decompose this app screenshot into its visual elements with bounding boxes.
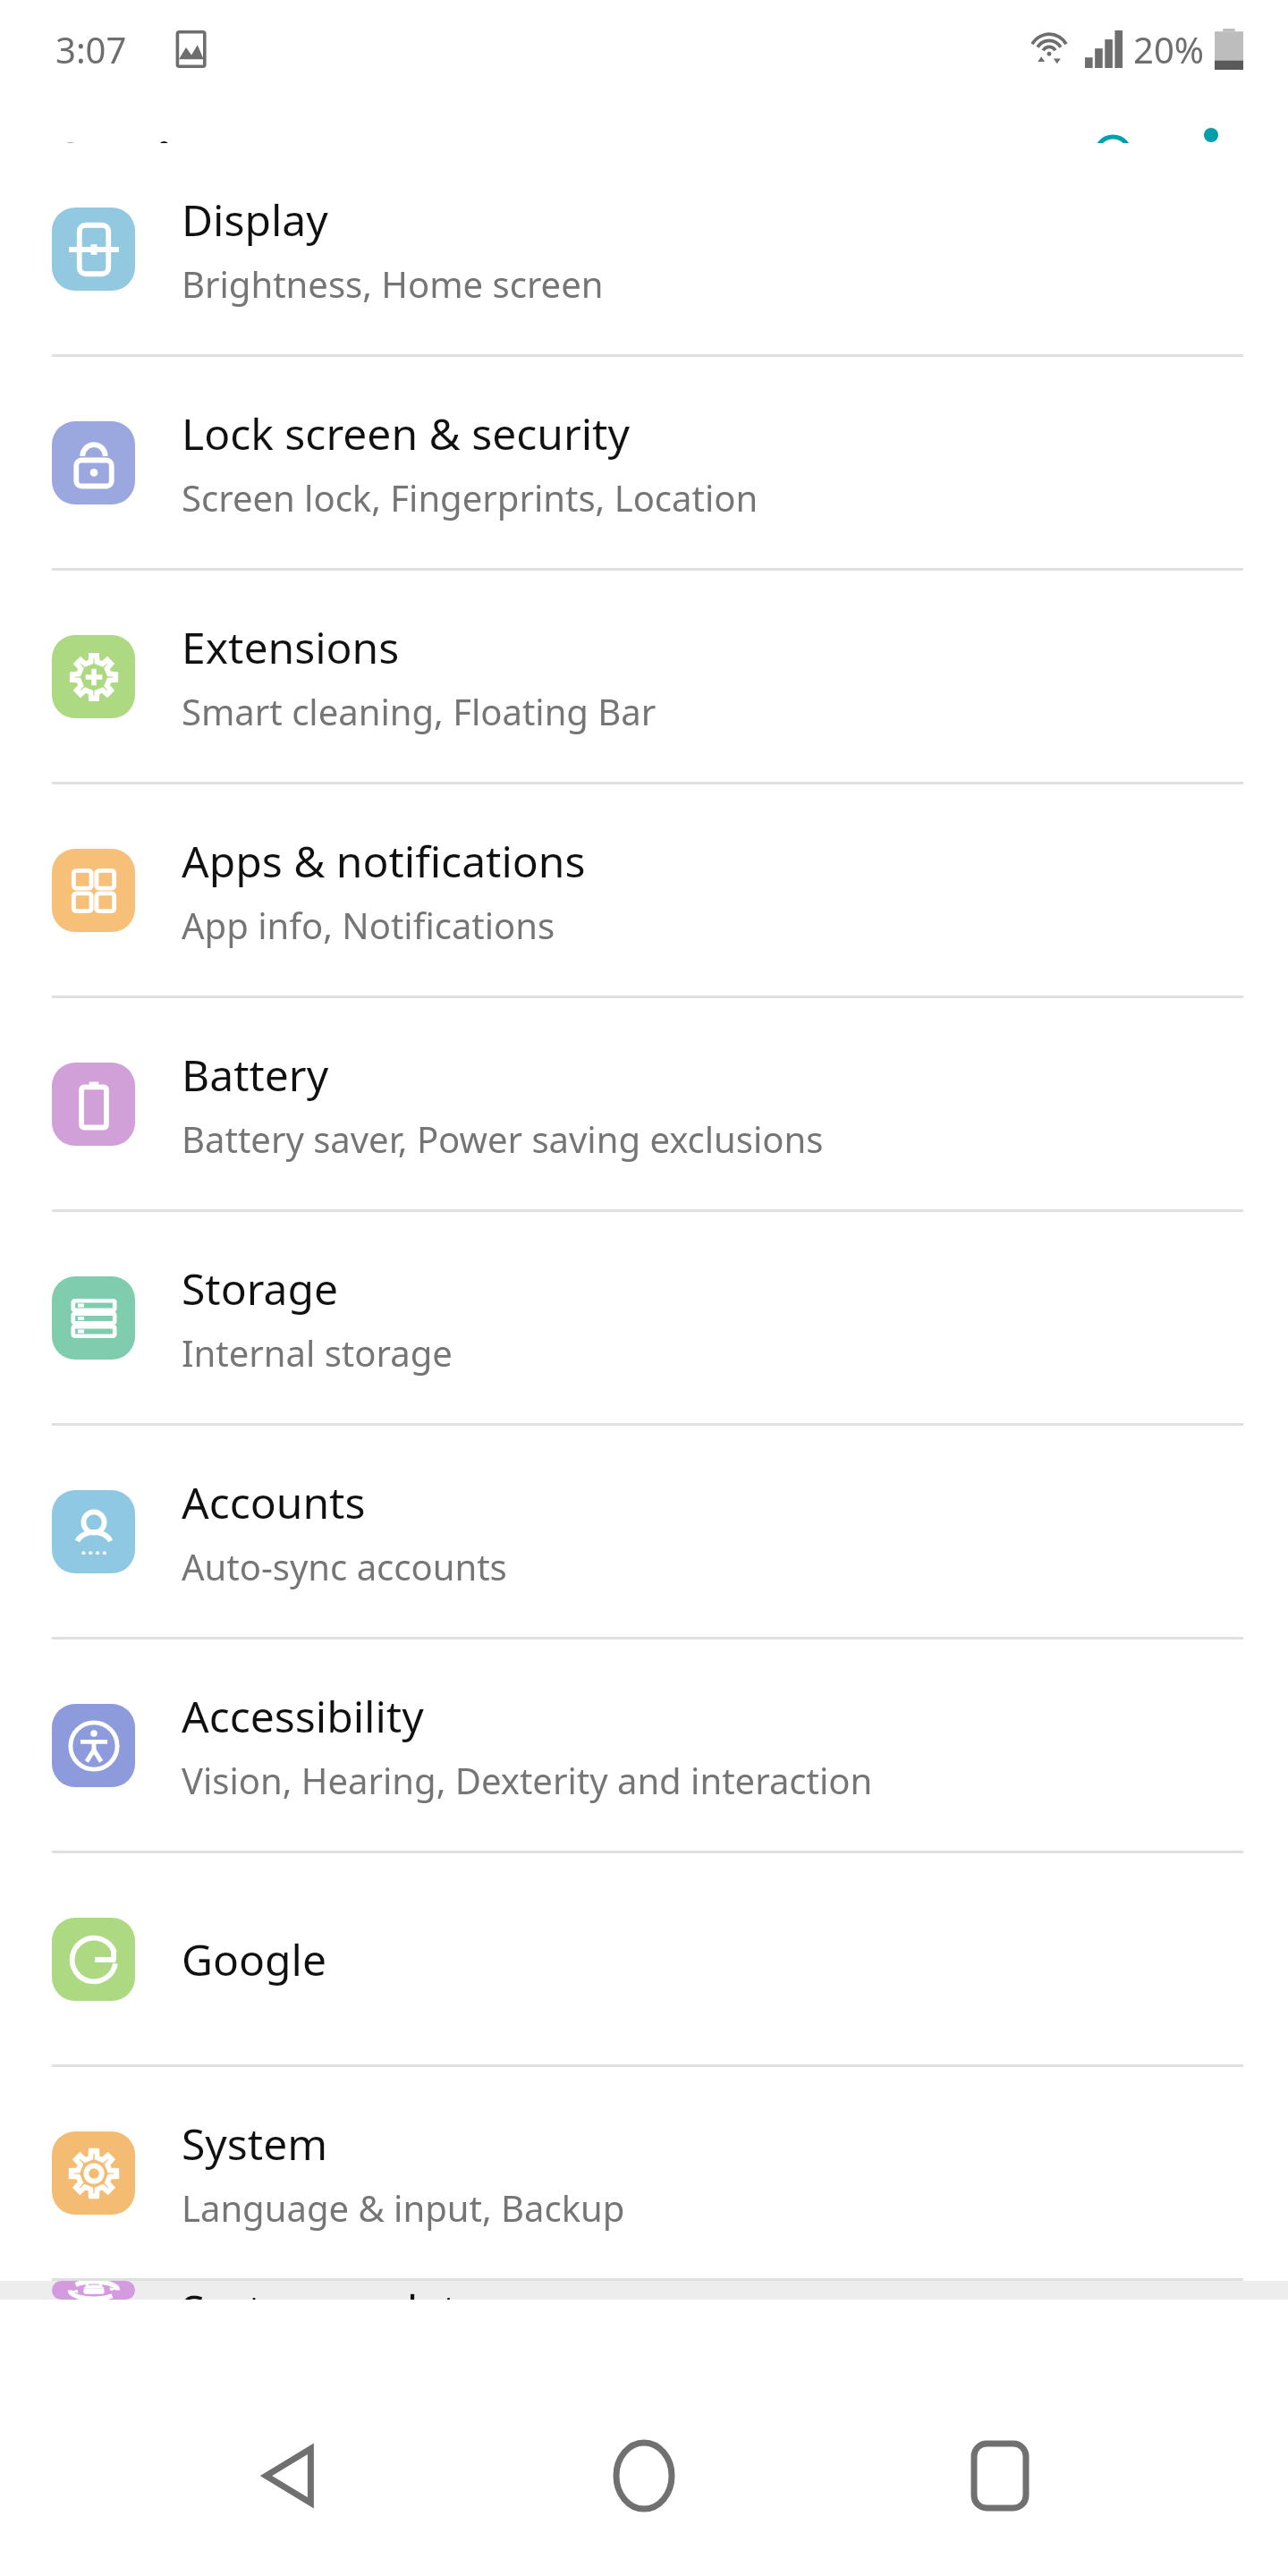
button[interactable]: Search [1068,110,1166,208]
button[interactable]: Accessibility [0,1640,1288,1851]
button[interactable]: More options [1166,114,1256,204]
button[interactable]: Battery [0,998,1288,1209]
staticText: Display [182,191,328,249]
button[interactable]: Home [577,2409,711,2543]
staticText: 20% [1133,25,1204,73]
staticText: Smart cleaning, Floating Bar [182,687,657,735]
staticText: Internal storage [182,1328,453,1377]
staticText: Battery [182,1046,329,1104]
staticText: 3:07 [55,25,127,73]
button[interactable]: Accounts [0,1426,1288,1637]
staticText: Language & input, Backup [182,2183,625,2232]
staticText: Google [182,1930,327,1988]
staticText: Accounts [182,1473,366,1531]
button[interactable]: Google [0,1853,1288,2064]
button[interactable]: System updates [0,2281,1288,2300]
staticText: Storage [182,1259,339,1318]
button[interactable]: Extensions [0,571,1288,782]
button[interactable]: System [0,2067,1288,2278]
staticText: Extensions [182,618,400,676]
staticText: Vision, Hearing, Dexterity and interacti… [182,1756,873,1804]
button[interactable]: Back [222,2409,356,2543]
staticText: Battery saver, Power saving exclusions [182,1114,824,1163]
button[interactable]: Lock screen & security [0,357,1288,568]
button[interactable]: Recents [933,2409,1067,2543]
staticText: System updates [182,2281,503,2300]
staticText: Auto-sync accounts [182,1542,507,1590]
staticText: Screen lock, Fingerprints, Location [182,473,758,521]
staticText: System [182,2114,328,2173]
button[interactable]: Display [0,143,1288,354]
staticText: Accessibility [182,1687,424,1745]
staticText: Settings [55,125,261,193]
staticText: Brightness, Home screen [182,259,604,308]
button[interactable]: Apps & notifications [0,784,1288,996]
staticText: App info, Notifications [182,901,555,949]
staticText: Apps & notifications [182,832,586,890]
staticText: Lock screen & security [182,404,630,462]
button[interactable]: Storage [0,1212,1288,1423]
